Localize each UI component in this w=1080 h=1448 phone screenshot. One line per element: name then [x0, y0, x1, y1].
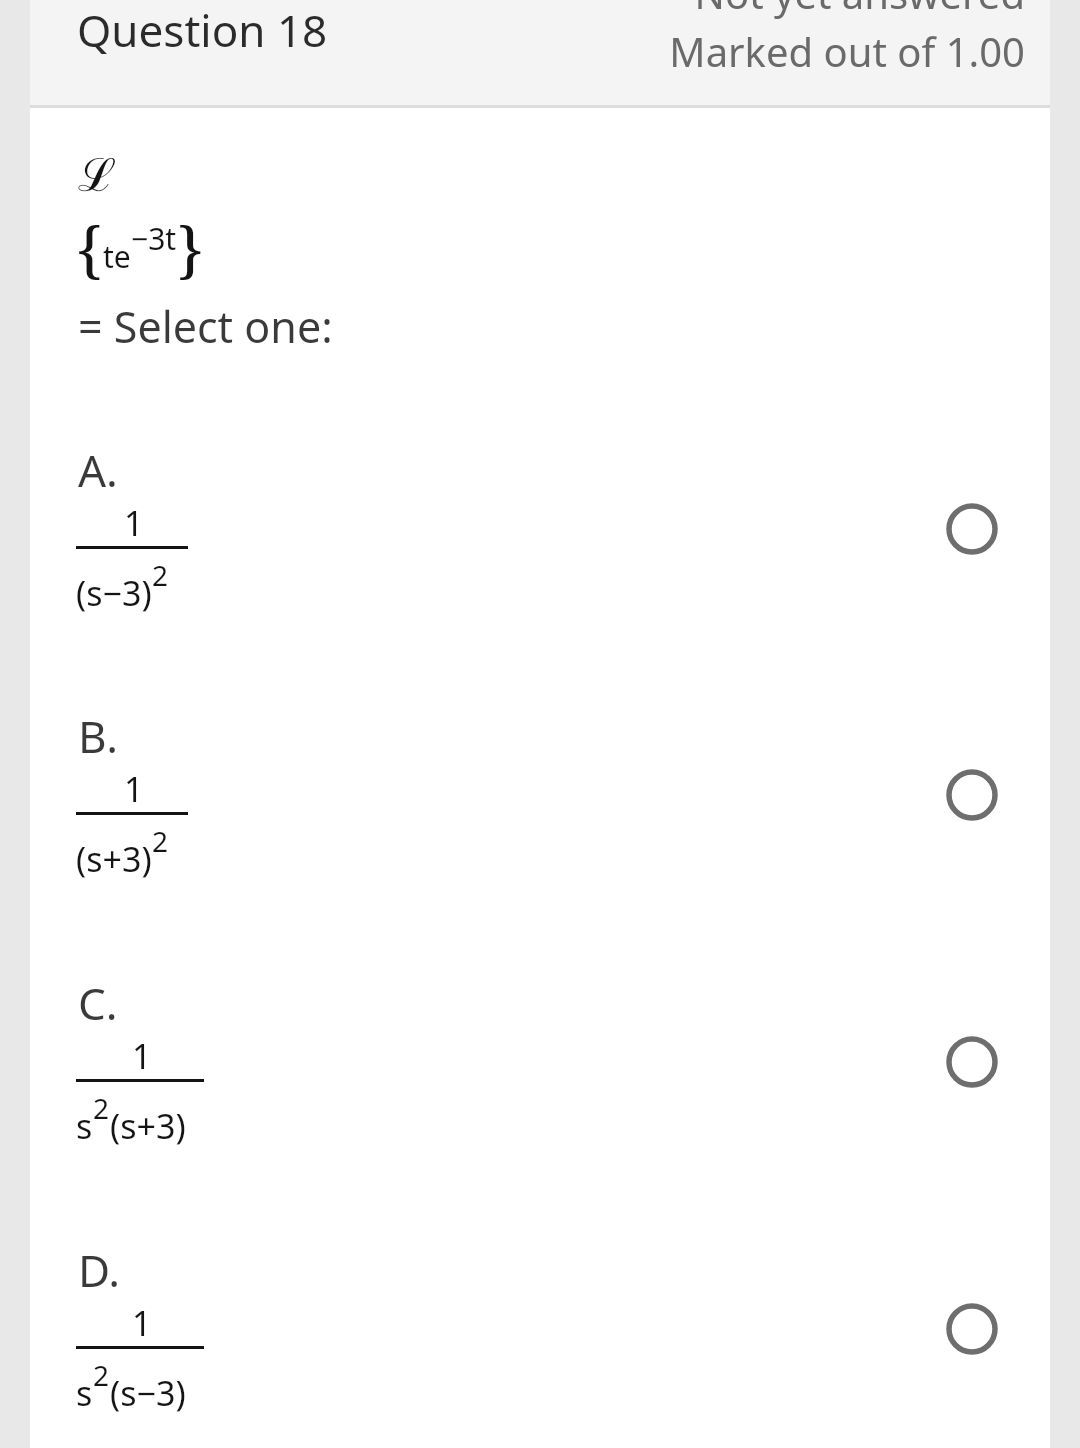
staticText: { — [76, 206, 103, 290]
staticText: 2 — [93, 1356, 110, 1394]
staticText: } — [177, 206, 204, 290]
staticText: te — [103, 236, 131, 277]
button[interactable]: Select option A. — [942, 499, 1002, 559]
staticText: 1 — [132, 1300, 152, 1346]
staticText: B. — [78, 706, 118, 766]
staticText: ℒ — [78, 142, 117, 205]
button[interactable]: Select option C. — [942, 1032, 1002, 1092]
staticText: −3t — [131, 218, 177, 259]
staticText: (s+3) — [110, 1103, 186, 1149]
staticText: C. — [78, 973, 118, 1033]
staticText: 2 — [152, 556, 169, 594]
staticText: Marked out of 1.00 — [669, 24, 1025, 71]
button[interactable]: C. — [30, 973, 1050, 1223]
staticText: (s−3) — [76, 570, 152, 616]
staticText: Question 18 — [77, 0, 328, 60]
staticText: 1 — [124, 500, 144, 546]
staticText: Not yet answered — [694, 0, 1025, 20]
button[interactable]: Select option B. — [942, 765, 1002, 825]
button[interactable]: D. — [30, 1240, 1050, 1448]
button[interactable]: Select option D. — [942, 1299, 1002, 1359]
button[interactable]: A. — [30, 440, 1050, 690]
staticText: 2 — [152, 822, 169, 860]
staticText: 1 — [132, 1033, 152, 1079]
staticText: (s−3) — [110, 1370, 186, 1416]
button[interactable]: B. — [30, 706, 1050, 956]
staticText: D. — [78, 1240, 121, 1300]
staticText: 2 — [93, 1089, 110, 1127]
staticText: 1 — [124, 766, 144, 812]
staticText: A. — [78, 440, 118, 500]
staticText: s — [76, 1103, 93, 1149]
staticText: (s+3) — [76, 836, 152, 882]
staticText: s — [76, 1370, 93, 1416]
staticText: = Select one: — [78, 297, 333, 356]
